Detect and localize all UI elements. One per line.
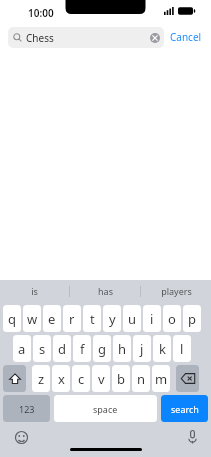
staticText: c (78, 370, 85, 388)
button[interactable]: z (32, 365, 50, 392)
button[interactable]: w (23, 305, 41, 332)
staticText: k (159, 340, 166, 358)
staticText: has (98, 285, 113, 297)
button[interactable]: r (63, 305, 81, 332)
button[interactable]: i (143, 305, 161, 332)
button[interactable]: v (92, 365, 110, 392)
staticText: y (109, 310, 116, 328)
staticText: r (69, 310, 75, 328)
button[interactable]: x (52, 365, 70, 392)
button[interactable]: o (163, 305, 181, 332)
staticText: Chess (26, 31, 54, 45)
button[interactable]: e (43, 305, 61, 332)
button[interactable]: b (112, 365, 130, 392)
button[interactable]: Dictation (182, 427, 202, 447)
staticText: b (117, 370, 125, 388)
button[interactable]: h (113, 335, 131, 362)
staticText: p (188, 310, 196, 328)
button[interactable]: Cancel (164, 26, 208, 48)
button[interactable]: players (141, 280, 211, 302)
button[interactable]: Emoji (11, 427, 31, 447)
staticText: z (38, 370, 45, 388)
staticText: a (18, 340, 26, 358)
button[interactable]: p (183, 305, 201, 332)
button[interactable]: q (3, 305, 21, 332)
button[interactable]: search (161, 395, 208, 422)
button[interactable]: f (73, 335, 91, 362)
staticText: v (98, 370, 105, 388)
staticText: q (8, 310, 16, 328)
button[interactable]: l (173, 335, 191, 362)
button[interactable]: j (133, 335, 151, 362)
button[interactable]: Clear search (146, 29, 164, 47)
staticText: l (180, 340, 184, 358)
button[interactable]: m (152, 365, 170, 392)
staticText: h (118, 340, 127, 358)
button[interactable]: s (33, 335, 51, 362)
button[interactable]: a (13, 335, 31, 362)
staticText: g (98, 340, 106, 358)
staticText: space (93, 403, 118, 415)
staticText: e (48, 310, 56, 328)
button[interactable]: d (53, 335, 71, 362)
button[interactable]: has (70, 280, 140, 302)
button[interactable]: Shift (3, 365, 26, 392)
staticText: 123 (19, 403, 35, 415)
staticText: s (39, 340, 46, 358)
button[interactable]: 123 (3, 395, 50, 422)
button[interactable]: k (153, 335, 171, 362)
staticText: u (128, 310, 137, 328)
button[interactable]: space (54, 395, 157, 422)
button[interactable]: g (93, 335, 111, 362)
staticText: 10:00 (28, 6, 54, 20)
button[interactable]: u (123, 305, 141, 332)
button[interactable]: Backspace (176, 365, 199, 392)
button[interactable]: t (83, 305, 101, 332)
staticText: is (31, 285, 38, 297)
staticText: o (168, 310, 176, 328)
staticText: n (137, 370, 146, 388)
staticText: m (155, 370, 168, 388)
button[interactable]: Chess (8, 27, 164, 48)
staticText: i (150, 310, 154, 328)
staticText: players (161, 285, 192, 297)
staticText: j (140, 340, 144, 358)
staticText: Cancel (170, 30, 202, 44)
staticText: x (58, 370, 65, 388)
staticText: d (58, 340, 66, 358)
staticText: w (27, 310, 38, 328)
staticText: t (90, 310, 95, 328)
staticText: f (80, 340, 85, 358)
button[interactable]: n (132, 365, 150, 392)
button[interactable]: is (0, 280, 69, 302)
button[interactable]: c (72, 365, 90, 392)
button[interactable]: y (103, 305, 121, 332)
staticText: search (171, 403, 199, 415)
